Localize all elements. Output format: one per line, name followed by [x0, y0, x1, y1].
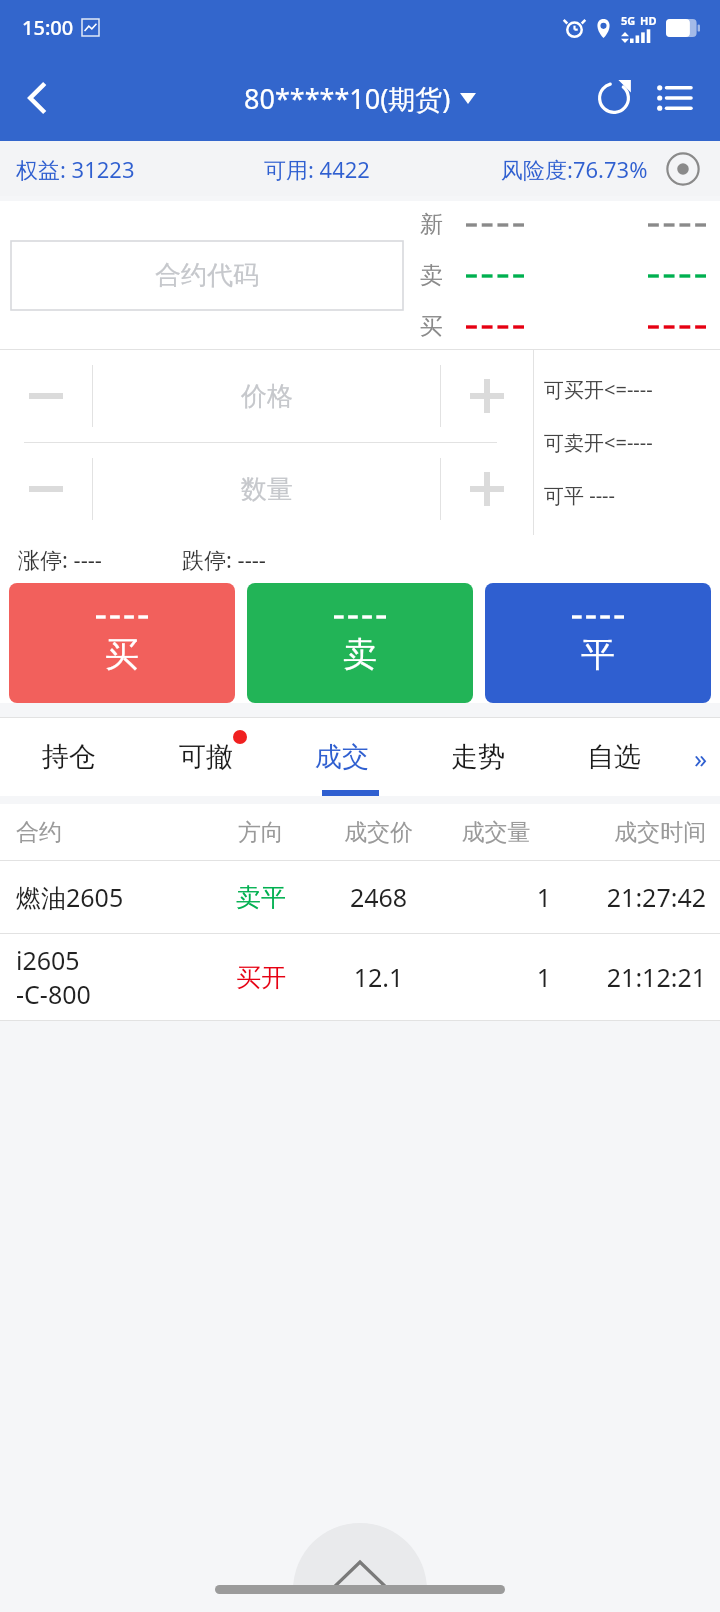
button[interactable]: Expand: [293, 1523, 427, 1590]
staticText: 成交时间: [551, 818, 706, 847]
staticText: HD: [640, 13, 657, 28]
staticText: i2605: [16, 943, 80, 977]
staticText: 可买开<=----: [544, 376, 653, 403]
staticText: 卖平: [206, 882, 316, 913]
button[interactable]: 燃油2605: [0, 861, 720, 933]
staticText: 1: [441, 880, 551, 914]
button[interactable]: Refresh: [584, 68, 644, 128]
staticText: 5G: [621, 13, 636, 28]
staticText: 自选: [587, 740, 641, 774]
staticText: 走势: [451, 740, 505, 774]
staticText: 可用: 4422: [264, 154, 501, 184]
staticText: 可平 ----: [544, 482, 615, 509]
staticText: 成交量: [441, 818, 551, 847]
button[interactable]: 持仓: [0, 718, 137, 796]
staticText: 燃油2605: [16, 880, 124, 914]
button[interactable]: Toggle visibility: [662, 148, 704, 190]
staticText: 12.1: [316, 960, 441, 994]
staticText: 成交: [315, 740, 369, 774]
staticText: 成交价: [316, 818, 441, 847]
button[interactable]: Back: [0, 55, 74, 141]
button[interactable]: Decrease 数量: [0, 443, 92, 535]
staticText: 持仓: [42, 740, 96, 774]
button[interactable]: Decrease 价格: [0, 350, 92, 442]
staticText: 方向: [206, 818, 316, 847]
staticText: 15:00: [22, 14, 74, 41]
button[interactable]: 数量: [93, 443, 440, 535]
button[interactable]: 成交: [274, 718, 410, 796]
button[interactable]: Increase 价格: [441, 350, 533, 442]
staticText: 跌停: ----: [182, 544, 266, 574]
staticText: 80*****10(期货): [244, 80, 451, 117]
button[interactable]: 自选: [546, 718, 682, 796]
staticText: 平: [581, 633, 615, 676]
staticText: 买: [105, 633, 139, 676]
button[interactable]: 价格: [93, 350, 440, 442]
button[interactable]: 卖: [247, 583, 473, 703]
staticText: 2468: [316, 880, 441, 914]
staticText: 买: [420, 312, 466, 341]
button[interactable]: 可撤: [137, 718, 274, 796]
button[interactable]: 平: [485, 583, 711, 703]
button[interactable]: 买: [9, 583, 235, 703]
staticText: 涨停: ----: [18, 544, 102, 574]
button[interactable]: Increase 数量: [441, 443, 533, 535]
staticText: 可卖开<=----: [544, 429, 653, 456]
staticText: »: [694, 740, 708, 775]
staticText: 合约代码: [155, 259, 259, 292]
staticText: 风险度:76.73%: [501, 154, 648, 184]
staticText: 权益: 31223: [16, 154, 264, 184]
staticText: 新: [420, 210, 466, 239]
button[interactable]: Menu: [644, 68, 704, 128]
button[interactable]: 80*****10(期货): [244, 80, 476, 117]
staticText: 21:12:21: [551, 960, 706, 994]
staticText: 买开: [206, 962, 316, 993]
button[interactable]: More tabs: [682, 718, 720, 796]
staticText: 价格: [241, 380, 293, 413]
staticText: 可撤: [179, 740, 233, 774]
staticText: 21:27:42: [551, 880, 706, 914]
button[interactable]: i2605: [0, 934, 720, 1020]
staticText: 卖: [420, 261, 466, 290]
button[interactable]: 走势: [410, 718, 546, 796]
staticText: -C-800: [16, 977, 91, 1011]
staticText: 合约: [16, 818, 206, 847]
button[interactable]: 合约代码: [11, 241, 403, 310]
staticText: 卖: [343, 633, 377, 676]
staticText: 数量: [241, 473, 293, 506]
staticText: 1: [441, 960, 551, 994]
